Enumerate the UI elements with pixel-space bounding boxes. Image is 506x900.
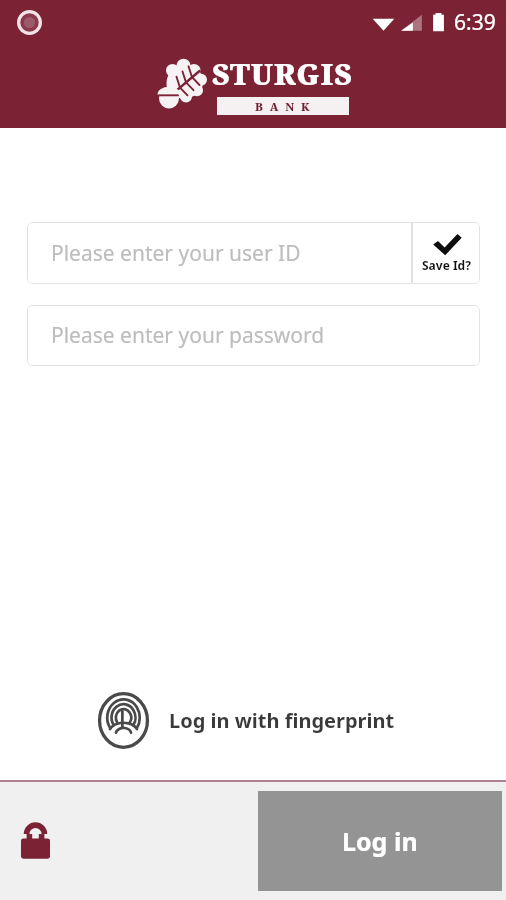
staticText: Log in with fingerprint [169, 707, 395, 734]
button[interactable]: Log in with fingerprint [95, 692, 395, 749]
staticText: Please enter your password [51, 321, 325, 350]
staticText: 6:39 [454, 8, 496, 37]
staticText: STURGIS [212, 54, 353, 93]
staticText: Please enter your user ID [51, 239, 301, 268]
button[interactable]: Secure connection [14, 817, 57, 866]
button[interactable]: Please enter your user ID [27, 222, 412, 284]
button[interactable]: Please enter your password [27, 305, 480, 366]
button[interactable]: Save Id [412, 222, 480, 284]
staticText: B A N K [255, 99, 312, 114]
staticText: Log in [342, 824, 418, 858]
staticText: Save Id? [422, 257, 471, 273]
button[interactable]: Log in [258, 791, 502, 891]
